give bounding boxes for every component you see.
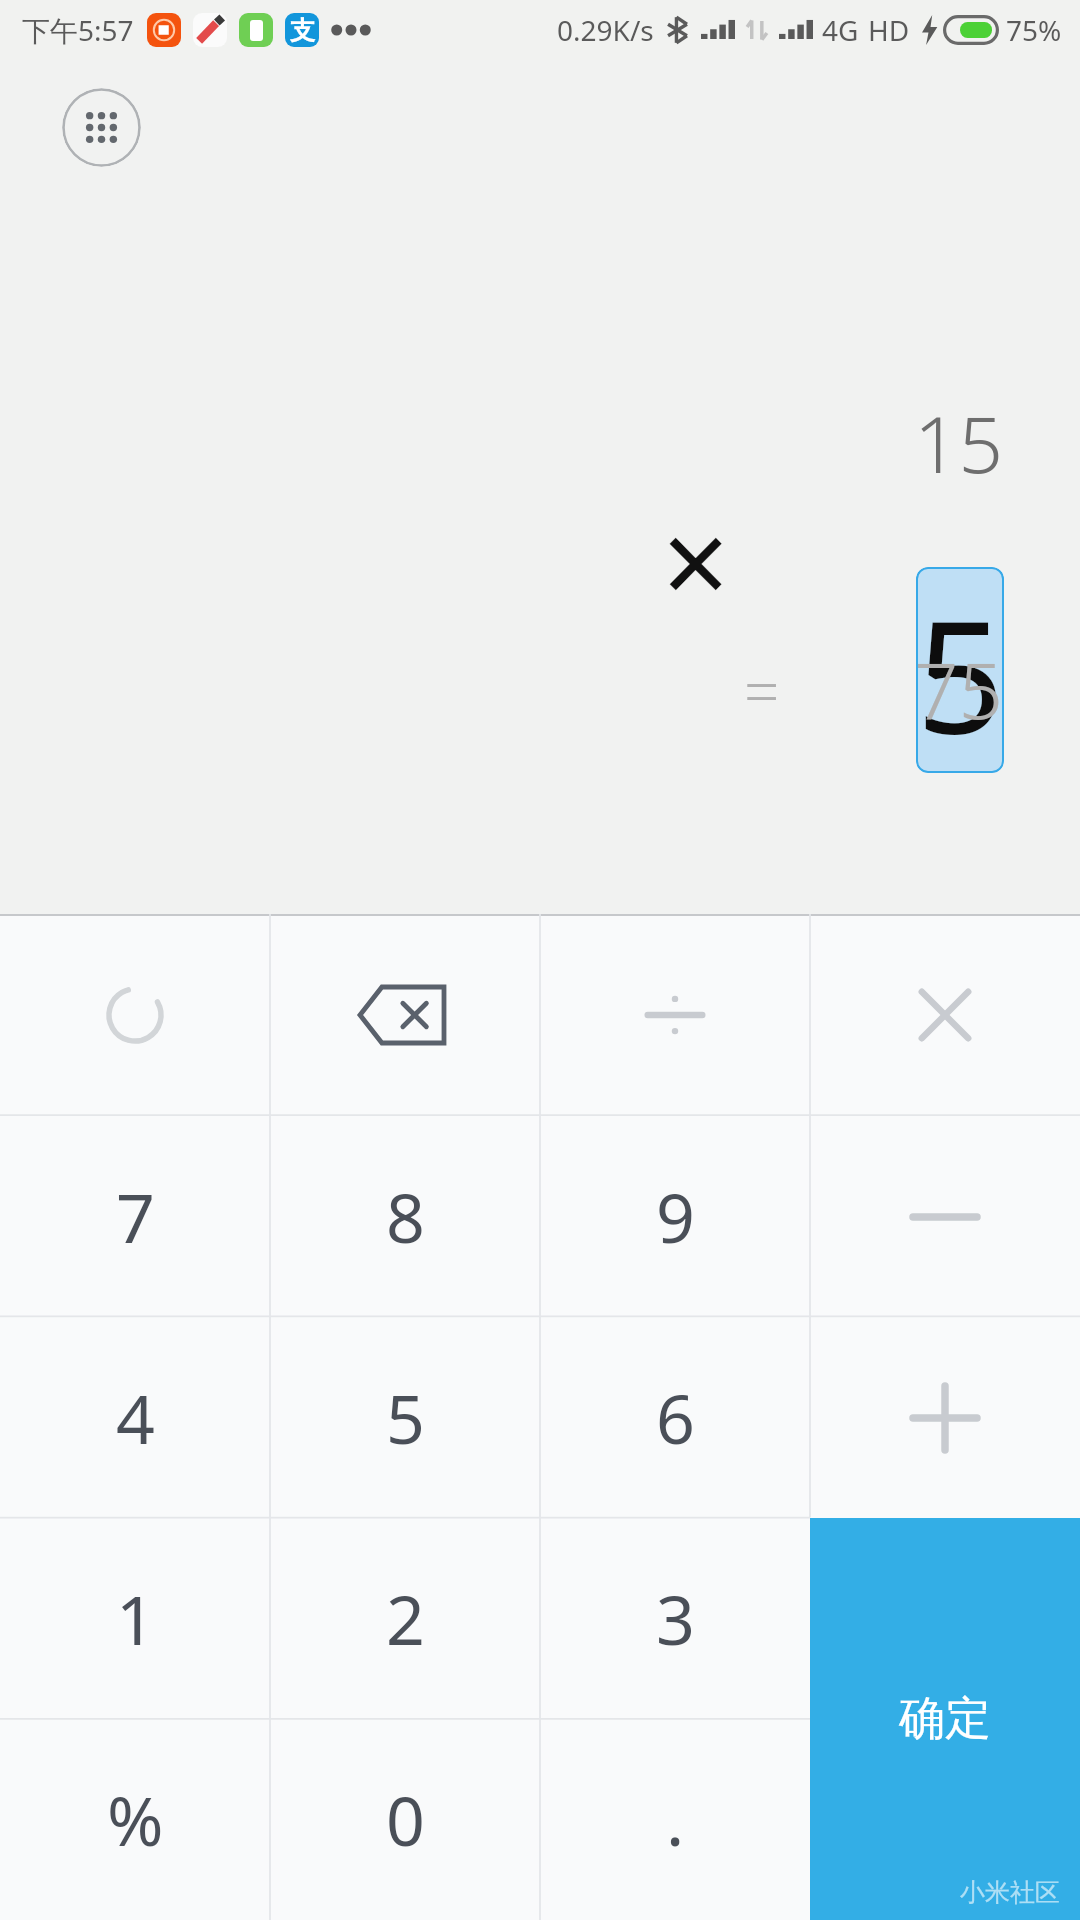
button[interactable]: 确定 [810,1518,1080,1920]
staticText: 6 [656,1371,695,1464]
button[interactable]: 7 [0,1116,270,1317]
staticText: 75 [914,636,1004,742]
staticText: 1 [116,1572,155,1665]
button[interactable]: % [0,1719,270,1920]
button[interactable]: 3 [540,1518,810,1719]
staticText: % [107,1773,164,1866]
button[interactable]: 5 [270,1317,540,1518]
button[interactable]: . [540,1719,810,1920]
button[interactable]: 0 [270,1719,540,1920]
button[interactable]: 6 [540,1317,810,1518]
staticText: 5 [916,567,1004,773]
staticText: 小米社区 [960,1877,1060,1908]
staticText: HD [868,11,910,49]
staticText: 2 [386,1572,425,1665]
button[interactable]: Backspace [270,914,540,1116]
button[interactable]: Multiply [810,914,1080,1116]
staticText: 3 [656,1572,695,1665]
button[interactable]: Plus [810,1317,1080,1518]
button[interactable]: Minus [810,1116,1080,1317]
staticText: 15 [914,390,1004,496]
staticText: = [744,648,780,732]
staticText: 支 [290,15,315,46]
button[interactable]: App drawer [62,88,141,167]
staticText: 0 [386,1773,425,1866]
button[interactable]: Divide [540,914,810,1116]
button[interactable]: 9 [540,1116,810,1317]
staticText: 7 [116,1170,155,1263]
button[interactable]: 2 [270,1518,540,1719]
staticText: 确定 [899,1690,991,1748]
staticText: 75% [1006,11,1062,49]
staticText: 8 [386,1170,425,1263]
staticText: . [666,1773,685,1866]
button[interactable]: 8 [270,1116,540,1317]
staticText: 0.29K/s [557,11,654,49]
button[interactable]: 1 [0,1518,270,1719]
staticText: 4 [116,1371,155,1464]
staticText: 9 [656,1170,695,1263]
button[interactable]: 5 [916,567,1004,773]
staticText: 5 [386,1371,425,1464]
button[interactable]: Clear [0,914,270,1116]
staticText: × [662,480,730,641]
button[interactable]: 4 [0,1317,270,1518]
staticText: 下午5:57 [22,11,134,49]
staticText: 4G [822,11,859,49]
